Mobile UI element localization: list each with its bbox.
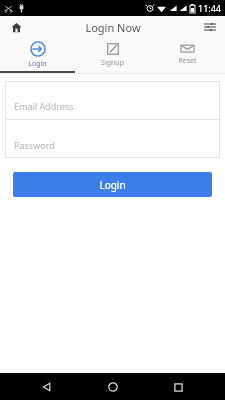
staticText: Login (99, 178, 126, 192)
button[interactable]: Back (34, 374, 60, 400)
button[interactable]: Home (100, 374, 126, 400)
staticText: 11:44 (198, 2, 222, 14)
button[interactable]: Login (0, 38, 75, 71)
button[interactable]: Email Address (5, 81, 220, 119)
staticText: Login (28, 59, 47, 69)
button[interactable]: Home (0, 16, 32, 38)
button[interactable]: Reset (150, 38, 225, 71)
staticText: Reset (178, 56, 197, 66)
button[interactable]: Login (13, 172, 212, 197)
button[interactable]: Signup (75, 38, 150, 71)
button[interactable]: Recent apps (165, 374, 191, 400)
staticText: Password (14, 139, 55, 151)
staticText: Email Address (14, 100, 74, 112)
button[interactable]: Settings (195, 16, 225, 38)
button[interactable]: Password (5, 120, 220, 158)
staticText: Login Now (85, 20, 141, 35)
staticText: Signup (101, 58, 124, 68)
